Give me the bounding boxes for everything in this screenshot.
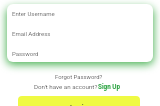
staticText: Don't have an account? bbox=[34, 83, 98, 90]
staticText: Login bbox=[70, 104, 88, 106]
button[interactable]: Forgot Password? bbox=[52, 72, 106, 82]
button[interactable]: Email Address bbox=[7, 26, 153, 42]
button[interactable]: Login bbox=[18, 96, 140, 106]
button[interactable]: Sign Up bbox=[98, 83, 120, 90]
button[interactable]: Enter Username bbox=[7, 6, 153, 22]
button[interactable]: Password bbox=[7, 46, 153, 62]
staticText: Enter Username bbox=[12, 10, 55, 17]
staticText: Password bbox=[12, 50, 39, 57]
staticText: Forgot Password? bbox=[55, 74, 103, 81]
staticText: Email Address bbox=[12, 30, 51, 37]
